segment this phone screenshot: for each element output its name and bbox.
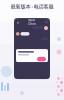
button[interactable]: Confirm	[37, 57, 46, 61]
button[interactable]: More	[44, 20, 48, 24]
staticText: ‹	[17, 18, 19, 26]
staticText: 最新版本 · 电话客服	[10, 3, 53, 10]
button[interactable]: Back	[16, 19, 20, 25]
staticText: Nora Chen	[28, 18, 36, 26]
